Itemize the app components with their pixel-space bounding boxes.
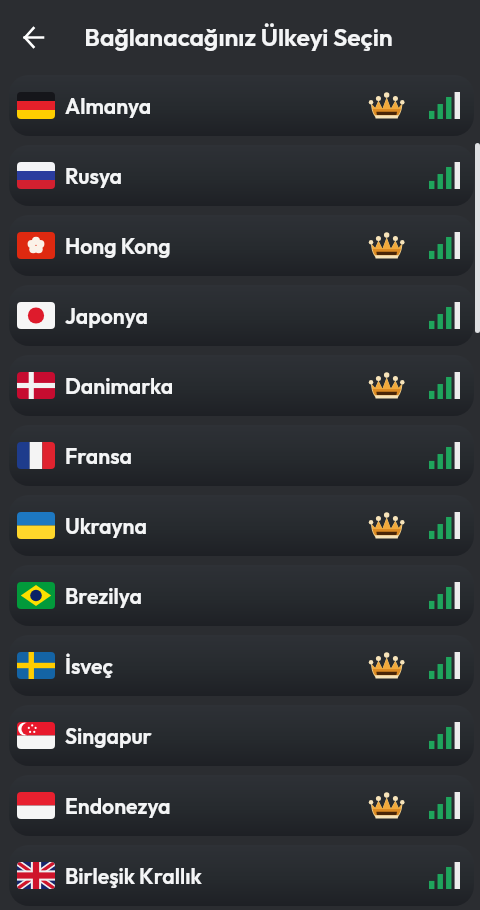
staticText: Japonya bbox=[65, 303, 148, 330]
button[interactable]: Japonya bbox=[9, 285, 474, 346]
button[interactable]: Birleşik Krallık bbox=[9, 845, 474, 906]
button[interactable]: İsveç bbox=[9, 635, 474, 696]
staticText: Rusya bbox=[65, 163, 123, 190]
button[interactable]: Singapur bbox=[9, 705, 474, 766]
button[interactable]: Brezilya bbox=[9, 565, 474, 626]
staticText: Bağlanacağınız Ülkeyi Seçin bbox=[84, 21, 393, 52]
button[interactable]: Danimarka bbox=[9, 355, 474, 416]
staticText: Brezilya bbox=[65, 583, 142, 610]
staticText: Fransa bbox=[65, 443, 133, 470]
button[interactable]: Hong Kong bbox=[9, 215, 474, 276]
button[interactable]: Ukrayna bbox=[9, 495, 474, 556]
button[interactable]: Almanya bbox=[9, 75, 474, 136]
staticText: Endonezya bbox=[65, 793, 171, 820]
button[interactable]: Fransa bbox=[9, 425, 474, 486]
staticText: İsveç bbox=[65, 653, 114, 680]
staticText: Birleşik Krallık bbox=[65, 863, 202, 890]
button[interactable]: Geri bbox=[10, 14, 57, 61]
staticText: Singapur bbox=[65, 723, 152, 750]
staticText: Ukrayna bbox=[65, 513, 147, 540]
staticText: Hong Kong bbox=[65, 233, 171, 260]
staticText: Danimarka bbox=[65, 373, 174, 400]
button[interactable]: Endonezya bbox=[9, 775, 474, 836]
button[interactable]: Rusya bbox=[9, 145, 474, 206]
staticText: Almanya bbox=[65, 93, 152, 120]
